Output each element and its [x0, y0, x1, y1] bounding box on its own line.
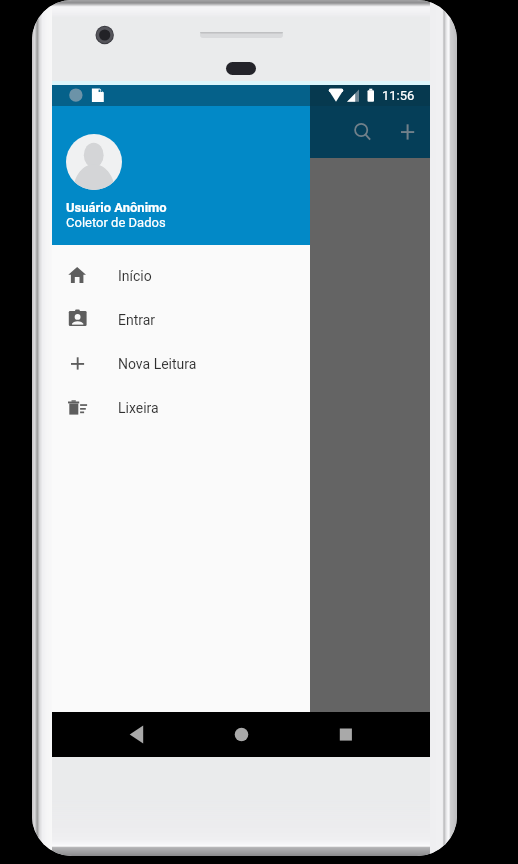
- staticText: 11:56: [382, 88, 415, 103]
- button[interactable]: Nova Leitura: [52, 349, 310, 379]
- staticText: Nova Leitura: [118, 356, 197, 372]
- button[interactable]: Lixeira: [52, 393, 310, 423]
- staticText: Coletor de Dados: [66, 215, 166, 230]
- staticText: Lixeira: [118, 400, 159, 416]
- button[interactable]: Usuário Anônimo: [52, 106, 310, 245]
- staticText: Início: [118, 268, 152, 284]
- button[interactable]: Entrar: [52, 305, 310, 335]
- button[interactable]: Início: [52, 261, 310, 291]
- staticText: Usuário Anônimo: [66, 200, 167, 215]
- staticText: Entrar: [118, 312, 156, 328]
- button[interactable]: Add: [386, 110, 430, 154]
- button[interactable]: Search: [339, 110, 383, 154]
